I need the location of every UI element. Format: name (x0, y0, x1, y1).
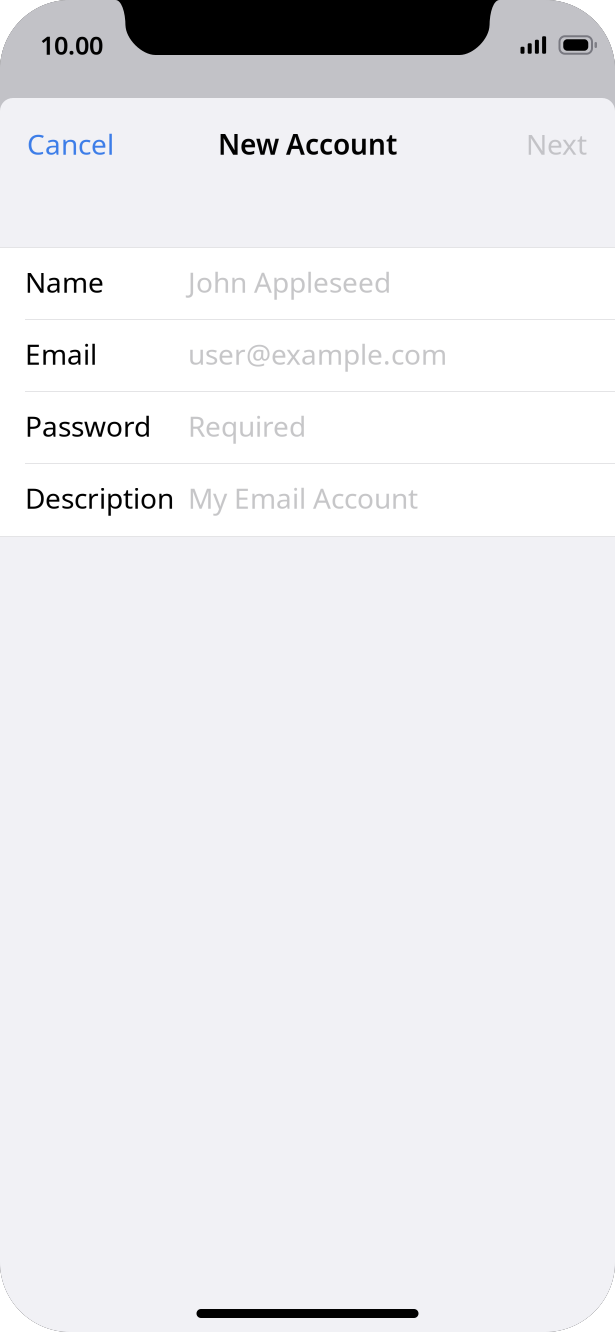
staticText: Description (25, 479, 174, 517)
button[interactable]: Name (0, 248, 615, 320)
staticText: New Account (218, 125, 397, 163)
button[interactable]: Cancel (27, 114, 128, 174)
staticText: John Appleseed (188, 263, 391, 301)
staticText: Next (526, 125, 587, 163)
staticText: Cancel (27, 125, 114, 163)
staticText: Password (25, 407, 151, 445)
button[interactable]: Next (512, 114, 587, 174)
staticText: user@example.com (188, 335, 447, 373)
button[interactable]: Email (0, 320, 615, 392)
staticText: Required (188, 407, 306, 445)
button[interactable]: Description (0, 464, 615, 536)
staticText: Email (25, 335, 97, 373)
staticText: My Email Account (188, 479, 418, 517)
button[interactable]: Password (0, 392, 615, 464)
staticText: Name (25, 263, 104, 301)
staticText: 10.00 (40, 28, 103, 62)
